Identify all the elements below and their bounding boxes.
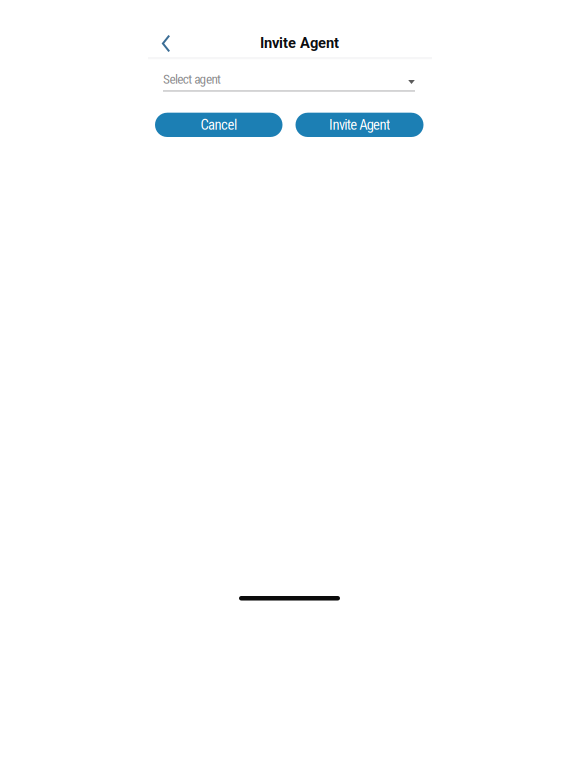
staticText: Invite Agent xyxy=(260,34,339,52)
button[interactable]: Cancel xyxy=(155,113,282,137)
button[interactable]: Home xyxy=(239,596,340,600)
staticText: Cancel xyxy=(200,116,237,133)
button[interactable]: Back xyxy=(148,29,170,57)
button[interactable]: Select agent xyxy=(163,68,415,92)
button[interactable]: Invite Agent xyxy=(295,113,423,137)
staticText: Invite Agent xyxy=(329,116,390,133)
staticText: Select agent xyxy=(163,71,221,87)
